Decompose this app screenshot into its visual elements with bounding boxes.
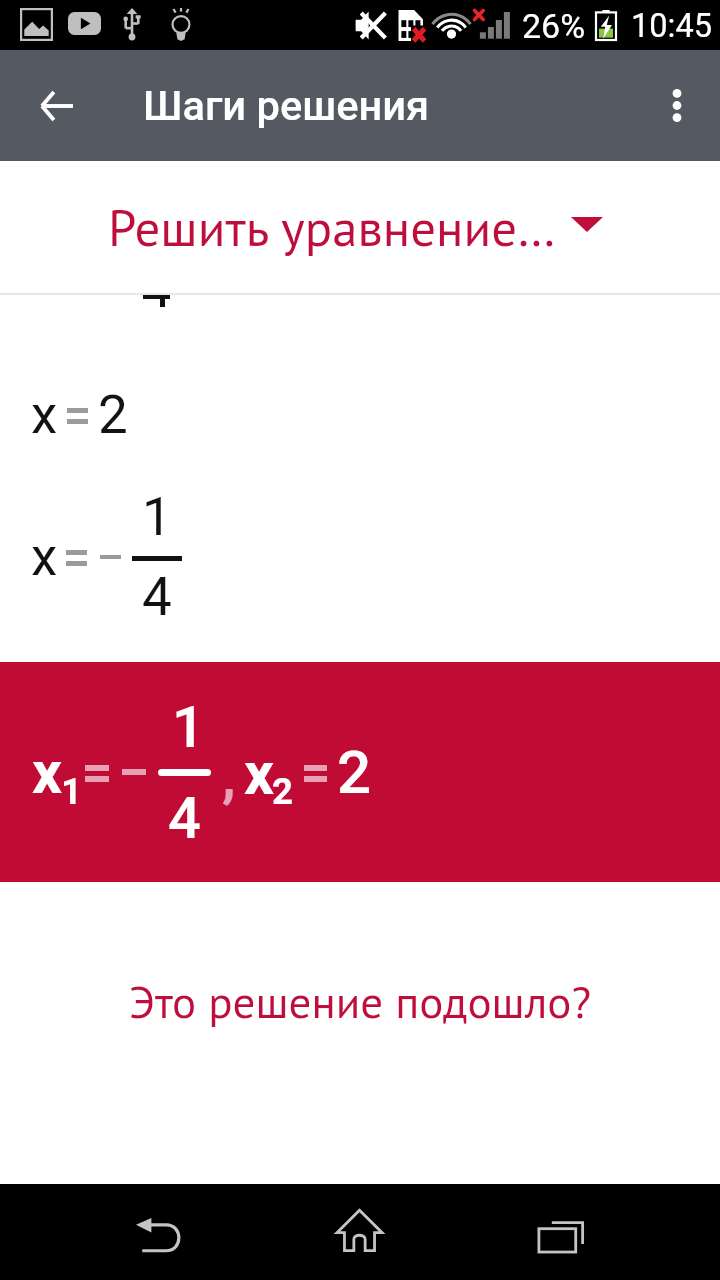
- staticText: 1: [172, 693, 205, 761]
- staticText: 4: [168, 784, 201, 852]
- staticText: x: [244, 739, 275, 808]
- button[interactable]: Это решение подошло?: [0, 962, 720, 1042]
- staticText: 1: [61, 770, 82, 813]
- staticText: 2: [337, 737, 372, 807]
- button[interactable]: Назад: [120, 1184, 240, 1280]
- staticText: 1: [142, 486, 172, 548]
- staticText: Это решение подошло?: [0, 972, 720, 1030]
- staticText: Решить уравнение…: [108, 194, 556, 260]
- button[interactable]: Ещё: [640, 50, 712, 161]
- staticText: 10:45: [631, 7, 712, 45]
- button[interactable]: Решить уравнение…: [0, 161, 720, 293]
- staticText: ,: [222, 744, 236, 810]
- staticText: Шаги решения: [143, 81, 430, 130]
- staticText: 2: [272, 770, 293, 813]
- button[interactable]: Обзор: [520, 1184, 640, 1280]
- staticText: x: [31, 526, 58, 588]
- button[interactable]: Назад: [20, 70, 92, 142]
- staticText: x: [31, 384, 58, 446]
- button[interactable]: Главный экран: [320, 1184, 440, 1280]
- staticText: 26%: [522, 6, 586, 46]
- staticText: 2: [98, 384, 128, 446]
- staticText: 4: [142, 566, 172, 628]
- staticText: x: [32, 738, 63, 807]
